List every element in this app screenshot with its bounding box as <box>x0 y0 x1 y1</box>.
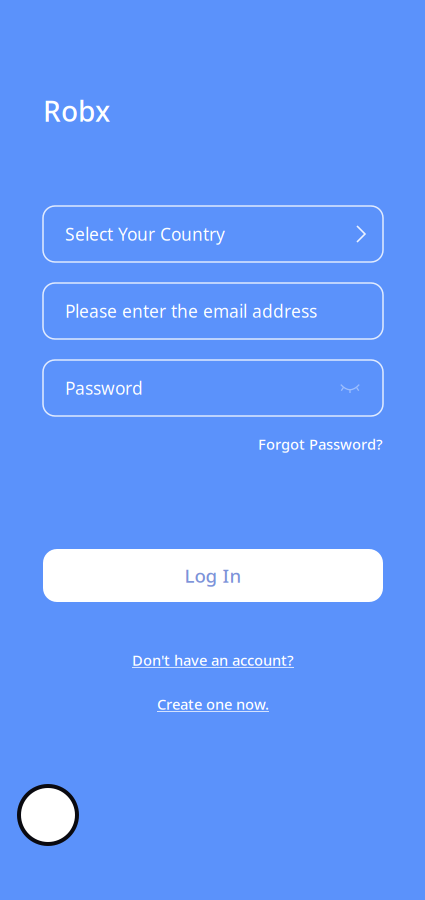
button[interactable]: Forgot Password? <box>43 435 383 453</box>
staticText: Select Your Country <box>65 222 225 245</box>
button[interactable]: Password <box>43 360 383 416</box>
staticText: Create one now. <box>157 694 269 714</box>
button[interactable]: Log In <box>43 549 383 602</box>
staticText: Robx <box>43 92 110 130</box>
button[interactable]: Create one now. <box>43 695 383 713</box>
staticText: Don't have an account? <box>132 650 294 670</box>
staticText: Log In <box>184 563 241 588</box>
staticText: Forgot Password? <box>258 434 383 454</box>
staticText: Password <box>65 376 143 399</box>
button[interactable]: Please enter the email address <box>43 283 383 339</box>
staticText: Please enter the email address <box>65 299 317 322</box>
button[interactable]: Don't have an account? <box>43 651 383 669</box>
button[interactable]: Select Your Country <box>43 206 383 262</box>
button[interactable]: Show password <box>328 366 372 410</box>
button[interactable]: AssistiveTouch <box>19 786 77 844</box>
